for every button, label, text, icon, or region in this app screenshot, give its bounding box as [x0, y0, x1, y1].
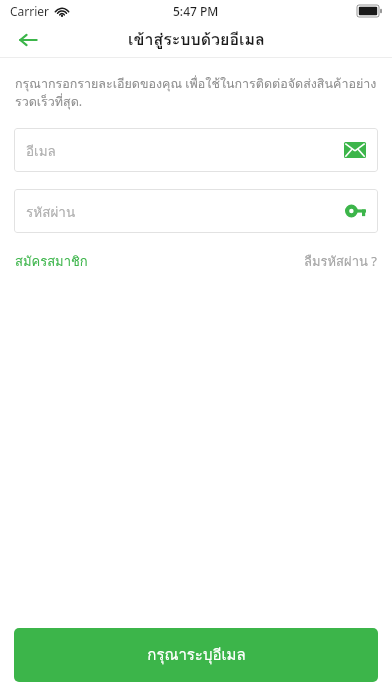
- button[interactable]: ลืมรหัสผ่าน ?: [304, 249, 377, 274]
- staticText: รหัสผ่าน: [26, 201, 344, 222]
- button[interactable]: Back: [8, 22, 48, 57]
- staticText: 5:47 PM: [173, 3, 219, 19]
- staticText: สมัครสมาชิก: [15, 251, 88, 272]
- staticText: กรุณาระบุอีเมล: [147, 643, 246, 667]
- button[interactable]: สมัครสมาชิก: [15, 249, 88, 274]
- button[interactable]: อีเมล: [14, 128, 378, 172]
- other: Password: [344, 203, 366, 219]
- staticText: Carrier: [10, 3, 50, 19]
- staticText: ลืมรหัสผ่าน ?: [304, 251, 377, 272]
- staticText: กรุณากรอกรายละเอียดของคุณ เพื่อใช้ในการต…: [15, 74, 377, 112]
- other: Email: [344, 142, 366, 158]
- button[interactable]: รหัสผ่าน: [14, 189, 378, 233]
- staticText: อีเมล: [26, 140, 344, 161]
- button[interactable]: กรุณาระบุอีเมล: [14, 628, 378, 682]
- staticText: เข้าสู่ระบบด้วยอีเมล: [128, 27, 265, 52]
